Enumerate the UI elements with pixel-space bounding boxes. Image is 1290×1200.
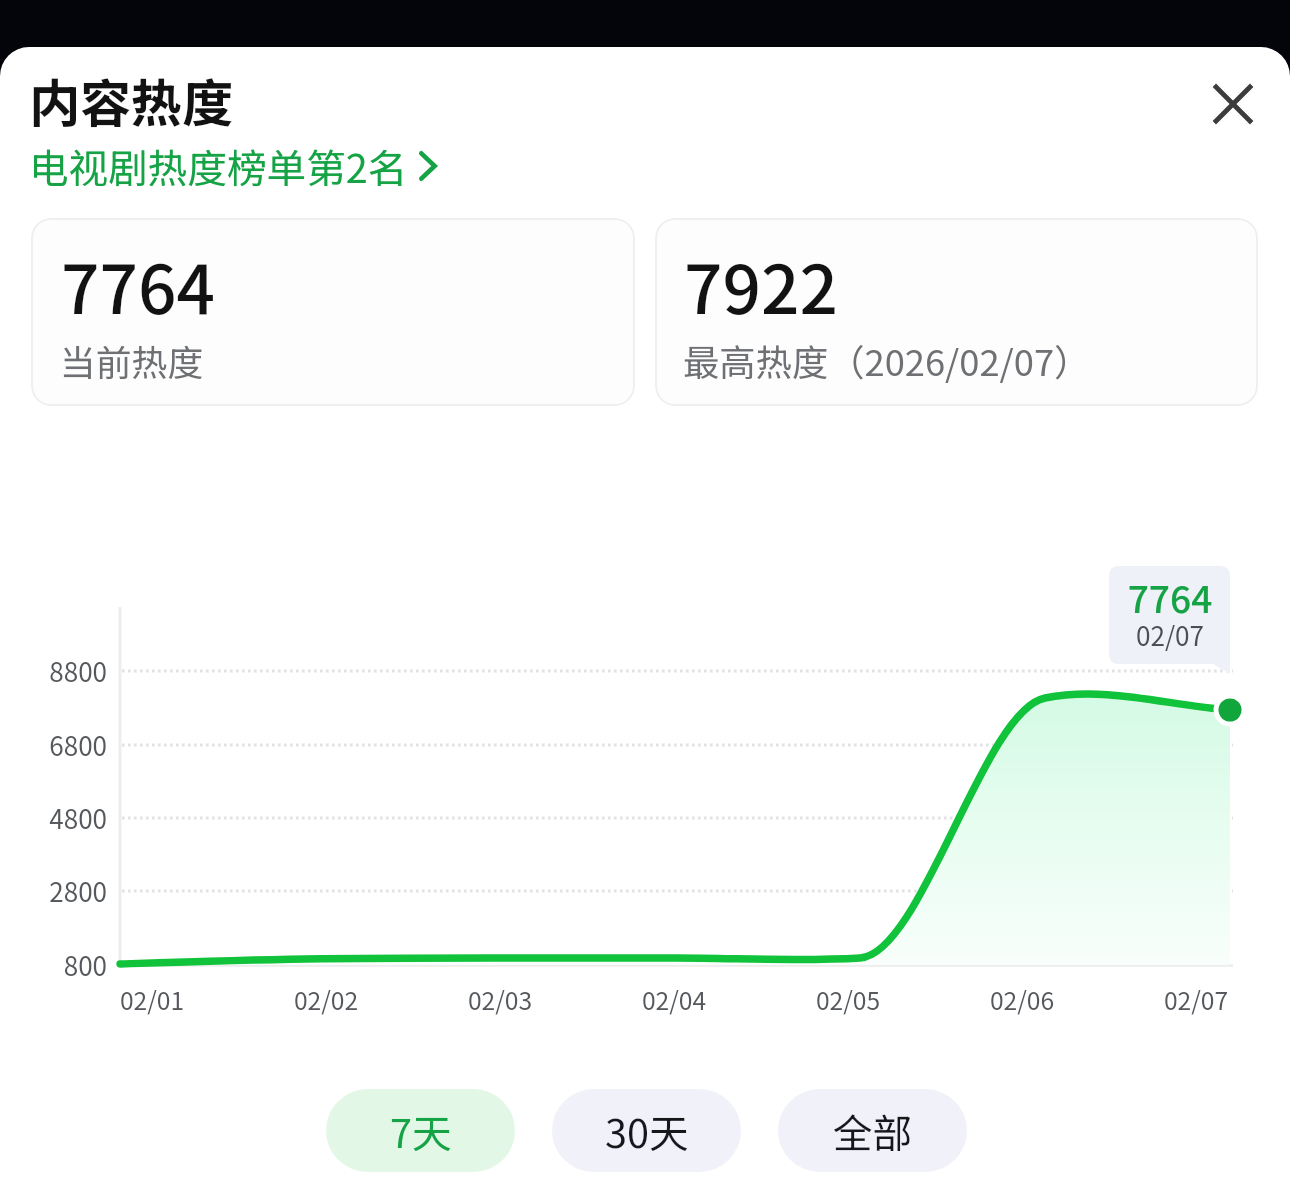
button[interactable]: 7764 <box>31 218 635 406</box>
staticText: 全部 <box>833 1102 913 1159</box>
staticText: 02/07 <box>1109 616 1231 654</box>
staticText: 7922 <box>684 236 984 334</box>
staticText: 4800 <box>0 799 107 837</box>
staticText: 02/02 <box>226 981 426 1017</box>
staticText: 02/01 <box>52 981 252 1017</box>
staticText: 8800 <box>0 652 107 690</box>
staticText: 800 <box>0 946 107 984</box>
button[interactable]: 7922 <box>655 218 1258 406</box>
button[interactable]: 7天 <box>326 1089 515 1172</box>
staticText: 7764 <box>61 236 361 334</box>
staticText: 6800 <box>0 726 107 764</box>
button[interactable]: 电视剧热度榜单第2名 <box>29 137 439 191</box>
staticText: 内容热度 <box>29 63 429 137</box>
staticText: 02/07 <box>1096 981 1290 1017</box>
staticText: 当前热度 <box>60 334 460 386</box>
staticText: 电视剧热度榜单第2名 <box>29 137 429 191</box>
staticText: 最高热度（2026/02/07） <box>683 334 1183 387</box>
staticText: 02/05 <box>748 981 948 1017</box>
staticText: 7天 <box>390 1102 452 1159</box>
button[interactable]: 全部 <box>778 1089 967 1172</box>
button[interactable]: Close <box>1185 56 1281 152</box>
staticText: 2800 <box>0 872 107 910</box>
staticText: 02/04 <box>574 981 774 1017</box>
staticText: 7764 <box>1109 570 1231 624</box>
staticText: 02/03 <box>400 981 600 1017</box>
staticText: 30天 <box>605 1102 689 1159</box>
button[interactable]: 30天 <box>552 1089 741 1172</box>
staticText: 02/06 <box>922 981 1122 1017</box>
